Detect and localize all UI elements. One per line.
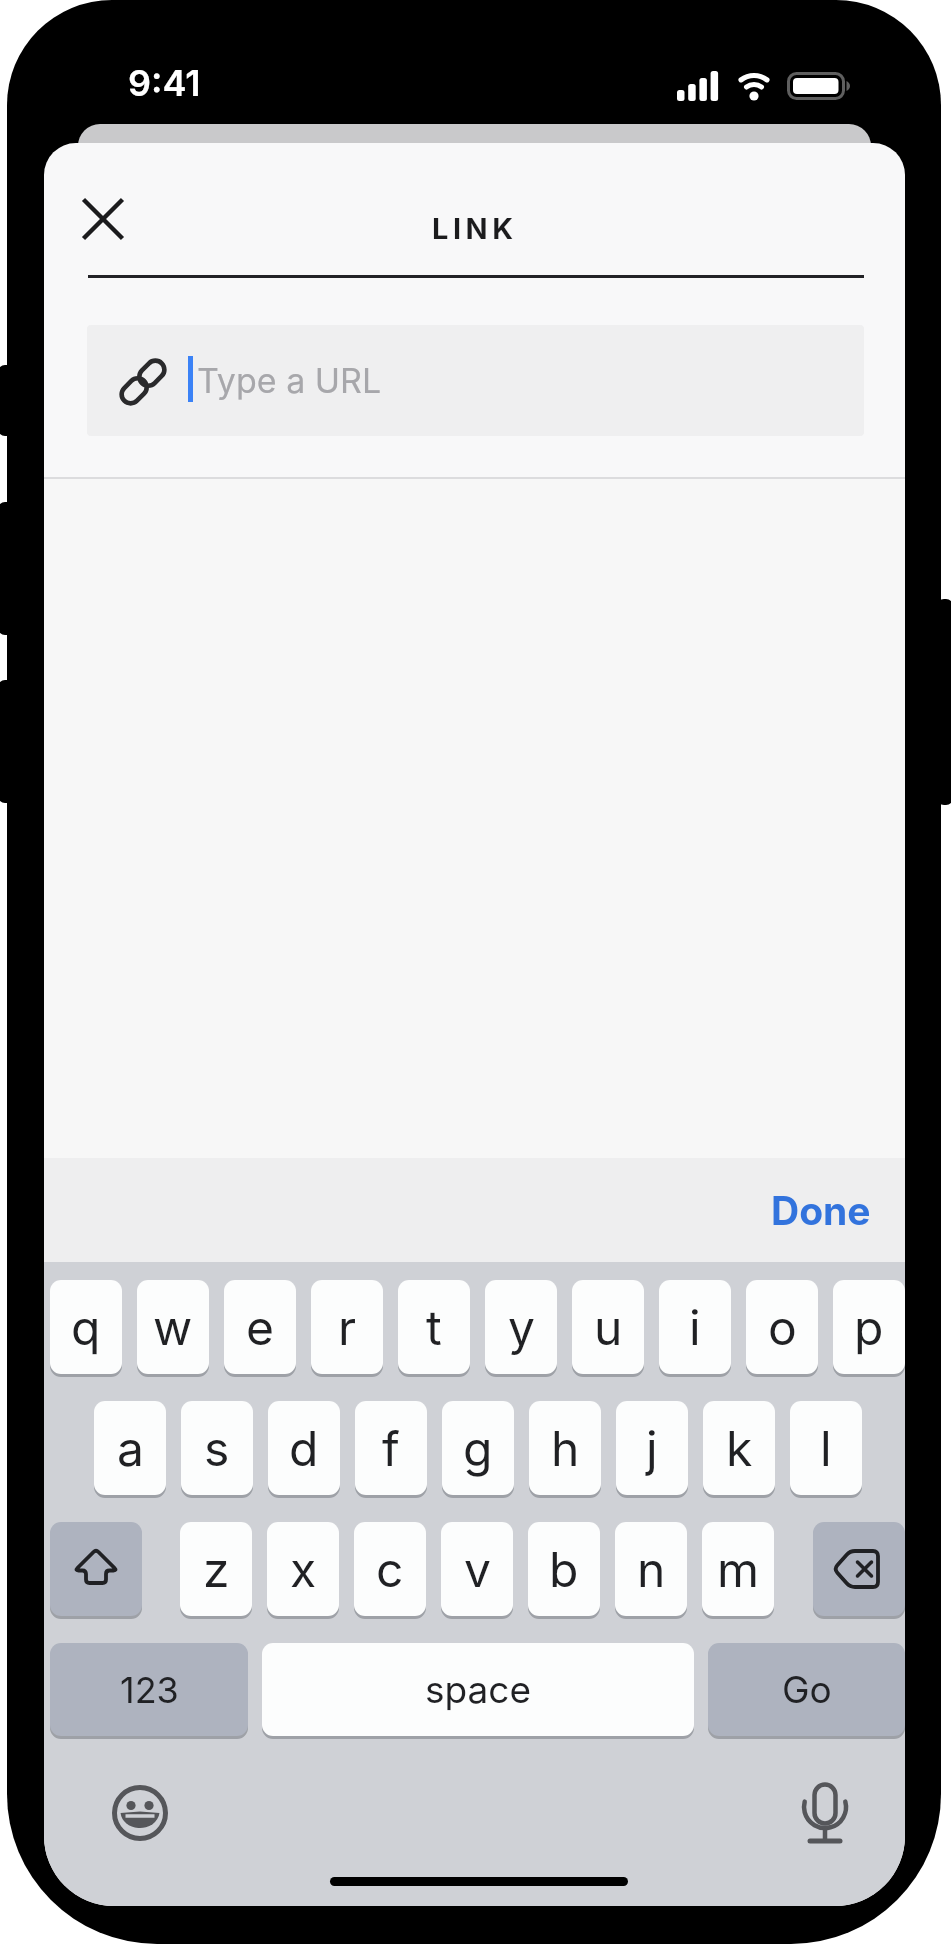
staticText: n — [637, 1540, 666, 1598]
staticText: o — [768, 1298, 797, 1356]
staticText: LINK — [432, 211, 518, 246]
button[interactable]: e — [224, 1280, 296, 1374]
button[interactable] — [813, 1522, 905, 1616]
button[interactable]: w — [137, 1280, 209, 1374]
staticText: f — [382, 1419, 400, 1477]
staticText: c — [376, 1540, 404, 1598]
staticText: k — [726, 1419, 753, 1477]
button[interactable]: h — [529, 1401, 601, 1495]
staticText: u — [594, 1298, 623, 1356]
staticText: w — [153, 1298, 193, 1356]
button[interactable]: n — [615, 1522, 687, 1616]
button[interactable]: p — [833, 1280, 905, 1374]
staticText: Go — [782, 1667, 832, 1712]
button[interactable]: g — [442, 1401, 514, 1495]
button[interactable]: Type a URL — [87, 325, 864, 436]
staticText: t — [426, 1298, 442, 1356]
staticText: j — [646, 1419, 658, 1477]
staticText: x — [290, 1540, 317, 1598]
staticText: i — [689, 1298, 701, 1356]
button[interactable]: z — [180, 1522, 252, 1616]
button[interactable]: d — [268, 1401, 340, 1495]
button[interactable]: r — [311, 1280, 383, 1374]
staticText: y — [508, 1298, 535, 1356]
button[interactable]: Done — [751, 1158, 891, 1262]
staticText: v — [464, 1540, 491, 1598]
staticText: l — [820, 1419, 832, 1477]
button[interactable] — [797, 1783, 853, 1845]
button[interactable]: b — [528, 1522, 600, 1616]
staticText: space — [425, 1667, 532, 1712]
button[interactable]: v — [441, 1522, 513, 1616]
button[interactable]: u — [572, 1280, 644, 1374]
button[interactable]: Go — [708, 1643, 905, 1736]
button[interactable]: a — [94, 1401, 166, 1495]
staticText: q — [71, 1298, 101, 1356]
staticText: e — [246, 1298, 274, 1356]
button[interactable]: l — [790, 1401, 862, 1495]
button[interactable]: k — [703, 1401, 775, 1495]
staticText: d — [289, 1419, 319, 1477]
button[interactable]: j — [616, 1401, 688, 1495]
staticText: h — [551, 1419, 580, 1477]
staticText: g — [463, 1419, 493, 1477]
staticText: b — [549, 1540, 579, 1598]
button[interactable] — [72, 188, 134, 250]
button[interactable]: f — [355, 1401, 427, 1495]
button[interactable]: c — [354, 1522, 426, 1616]
button[interactable]: o — [746, 1280, 818, 1374]
staticText: 123 — [120, 1668, 179, 1712]
button[interactable]: s — [181, 1401, 253, 1495]
button[interactable]: q — [50, 1280, 122, 1374]
button[interactable]: x — [267, 1522, 339, 1616]
staticText: s — [204, 1419, 230, 1477]
staticText: Type a URL — [197, 360, 382, 401]
staticText: 9:41 — [128, 61, 201, 105]
button[interactable] — [112, 1785, 168, 1841]
button[interactable]: i — [659, 1280, 731, 1374]
button[interactable]: space — [262, 1643, 694, 1736]
button[interactable]: t — [398, 1280, 470, 1374]
staticText: z — [203, 1540, 230, 1598]
staticText: p — [854, 1298, 884, 1356]
staticText: a — [117, 1419, 144, 1477]
staticText: r — [338, 1298, 357, 1356]
staticText: m — [717, 1540, 760, 1598]
button[interactable] — [50, 1522, 142, 1616]
button[interactable]: y — [485, 1280, 557, 1374]
button[interactable]: 123 — [50, 1643, 248, 1736]
staticText: Done — [771, 1187, 871, 1234]
button[interactable]: m — [702, 1522, 774, 1616]
